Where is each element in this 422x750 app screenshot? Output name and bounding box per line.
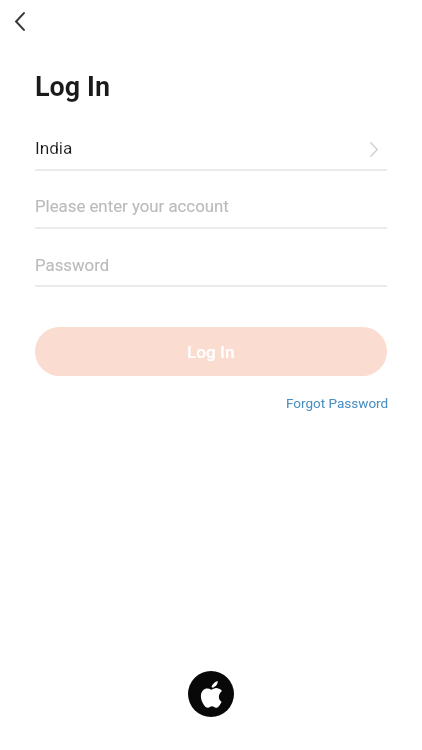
button[interactable]: Back (3, 4, 37, 38)
staticText: Log In (187, 342, 235, 362)
staticText: Log In (35, 71, 111, 103)
button[interactable]: India (35, 133, 387, 165)
staticText: Forgot Password (286, 395, 389, 411)
button[interactable]: Forgot Password (286, 395, 389, 411)
staticText: India (35, 138, 73, 158)
button[interactable]: Log In (35, 327, 387, 376)
button[interactable]: Sign in with Apple (188, 671, 234, 717)
staticText: Password (35, 255, 110, 275)
staticText: Please enter your account (35, 196, 229, 216)
